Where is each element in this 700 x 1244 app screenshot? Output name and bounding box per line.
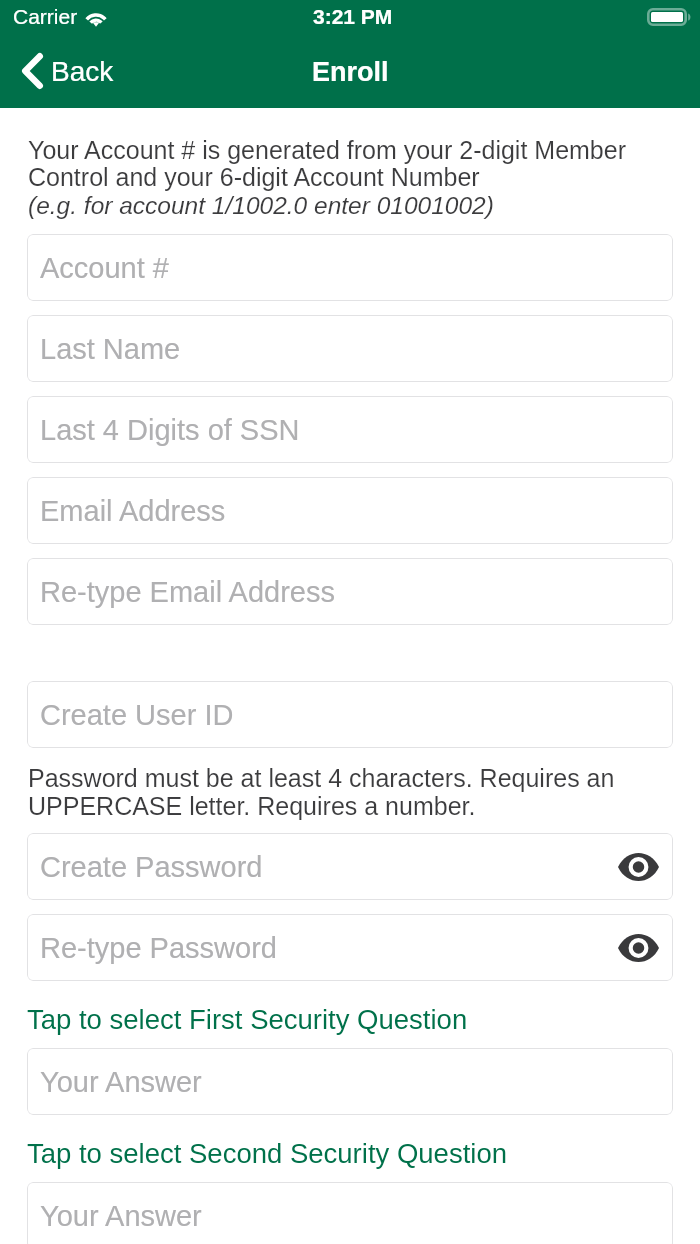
staticText: Password must be at least 4 characters. … xyxy=(28,764,615,820)
button[interactable]: Show password xyxy=(612,922,664,974)
button[interactable]: Back xyxy=(22,46,114,96)
staticText: Create User ID xyxy=(40,699,234,731)
staticText: Email Address xyxy=(40,495,226,527)
staticText: Account # xyxy=(40,252,169,284)
staticText: 3:21 PM xyxy=(313,5,393,28)
staticText: (e.g. for account 1/1002.0 enter 0100100… xyxy=(28,192,494,219)
staticText: Tap to select First Security Question xyxy=(27,1004,468,1035)
staticText: Your Answer xyxy=(40,1066,202,1098)
staticText: Your Answer xyxy=(40,1200,202,1232)
button[interactable]: Re-type Email Address xyxy=(27,558,673,625)
staticText: Create Password xyxy=(40,851,263,883)
staticText: Your Account # is generated from your 2-… xyxy=(28,136,626,191)
button[interactable]: Email Address xyxy=(27,477,673,544)
button[interactable]: Tap to select Second Security Question xyxy=(27,1134,673,1172)
staticText: Carrier xyxy=(13,5,78,28)
button[interactable]: Your Answer xyxy=(27,1048,673,1115)
button[interactable]: Create Password xyxy=(27,833,673,900)
staticText: Re-type Email Address xyxy=(40,576,335,608)
staticText: Tap to select Second Security Question xyxy=(27,1138,507,1169)
staticText: Back xyxy=(51,56,114,87)
staticText: Last Name xyxy=(40,333,181,365)
button[interactable]: Account # xyxy=(27,234,673,301)
button[interactable]: Your Answer xyxy=(27,1182,673,1244)
button[interactable]: Show password xyxy=(612,841,664,893)
button[interactable]: Last Name xyxy=(27,315,673,382)
button[interactable]: Last 4 Digits of SSN xyxy=(27,396,673,463)
button[interactable]: Tap to select First Security Question xyxy=(27,1000,673,1038)
staticText: Last 4 Digits of SSN xyxy=(40,414,300,446)
button[interactable]: Re-type Password xyxy=(27,914,673,981)
staticText: Re-type Password xyxy=(40,932,277,964)
staticText: Enroll xyxy=(312,57,389,87)
button[interactable]: Create User ID xyxy=(27,681,673,748)
